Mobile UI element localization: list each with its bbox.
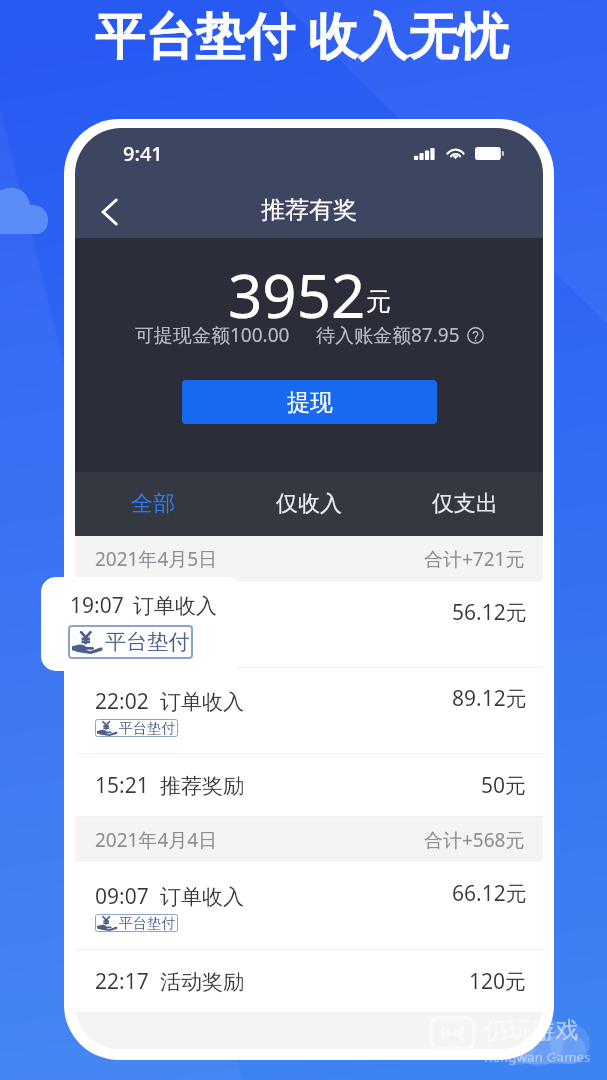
staticText: 89.12元 — [452, 684, 527, 713]
staticText: 15:21 — [95, 771, 149, 800]
staticText: 推荐奖励 — [160, 773, 244, 799]
staticText: 推荐有奖 — [261, 195, 357, 225]
staticText: 平台垫付 收入无忧 — [95, 1, 508, 69]
staticText: 订单收入 — [160, 689, 244, 715]
button[interactable]: 仅收入 — [231, 472, 387, 536]
staticText: 订单收入 — [133, 593, 217, 619]
staticText: 合计+568元 — [424, 827, 525, 853]
staticText: 50元 — [481, 771, 527, 800]
button[interactable]: 全部 — [75, 472, 231, 536]
staticText: 平台垫付 — [119, 914, 176, 932]
button[interactable]: Help — [466, 326, 484, 344]
button[interactable]: 仅支出 — [387, 472, 543, 536]
staticText: 订单收入 — [160, 603, 244, 629]
staticText: 22:02 — [95, 687, 149, 716]
button[interactable]: 22:02 — [75, 668, 543, 754]
staticText: 3952 — [228, 254, 366, 336]
button[interactable]: 22:17 — [75, 950, 543, 1013]
staticText: 56.12元 — [452, 598, 527, 627]
staticText: 9:41 — [123, 140, 163, 167]
staticText: 平台垫付 — [119, 719, 176, 737]
staticText: 09:07 — [95, 882, 149, 911]
staticText: 可提现金额100.00 — [135, 322, 290, 348]
staticText: 提现 — [287, 388, 333, 417]
staticText: 活动奖励 — [160, 969, 244, 995]
staticText: 待入账金额87.95 — [316, 322, 460, 348]
staticText: 2021年4月4日 — [95, 827, 218, 853]
staticText: 订单收入 — [160, 884, 244, 910]
button[interactable]: Back — [75, 178, 143, 238]
staticText: 仅支出 — [432, 490, 498, 518]
button[interactable]: 提现 — [182, 380, 437, 424]
staticText: 19:07 — [70, 591, 124, 620]
staticText: 120元 — [469, 967, 527, 996]
staticText: 仍玩游戏 — [484, 1016, 580, 1045]
staticText: 66.12元 — [452, 879, 527, 908]
staticText: 平台垫付 — [105, 629, 190, 656]
staticText: 22:17 — [95, 967, 149, 996]
staticText: 合计+721元 — [424, 546, 525, 572]
staticText: 元 — [366, 286, 391, 317]
button[interactable]: 15:21 — [75, 754, 543, 817]
staticText: 全部 — [131, 490, 175, 518]
staticText: Rengwan Games — [484, 1048, 591, 1066]
button[interactable]: 19:07 — [75, 582, 543, 668]
staticText: 19:07 — [95, 601, 149, 630]
staticText: 仅收入 — [276, 490, 342, 518]
button[interactable]: 09:07 — [75, 862, 543, 950]
staticText: 2021年4月5日 — [95, 546, 218, 572]
button[interactable]: 19:07 — [41, 577, 243, 671]
staticText: 平台垫付 — [119, 633, 176, 651]
